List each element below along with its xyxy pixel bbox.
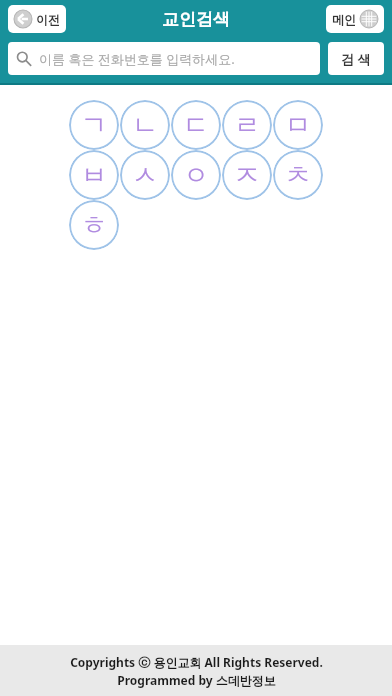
button[interactable]: 이전 bbox=[8, 5, 66, 33]
staticText: ㅁ bbox=[285, 109, 311, 142]
staticText: 메인 bbox=[332, 12, 356, 27]
button[interactable]: ㅂ bbox=[69, 150, 119, 200]
button[interactable]: ㅅ bbox=[120, 150, 170, 200]
staticText: Programmed by 스데반정보 bbox=[117, 672, 276, 688]
staticText: ㅊ bbox=[285, 159, 311, 192]
button[interactable]: 검 색 bbox=[328, 42, 384, 75]
button[interactable]: 메인 bbox=[326, 5, 384, 33]
staticText: ㄴ bbox=[132, 109, 158, 142]
button[interactable]: ㅎ bbox=[69, 200, 119, 250]
staticText: ㄷ bbox=[183, 109, 209, 142]
staticText: ㄱ bbox=[81, 109, 107, 142]
staticText: ㄹ bbox=[234, 109, 260, 142]
staticText: ㅇ bbox=[183, 159, 209, 192]
staticText: ㅈ bbox=[234, 159, 260, 192]
button[interactable]: ㅇ bbox=[171, 150, 221, 200]
staticText: 교인검색 bbox=[162, 9, 230, 30]
staticText: ㅅ bbox=[132, 159, 158, 192]
other: Main menu bbox=[360, 10, 378, 28]
button[interactable]: Search bbox=[8, 42, 320, 75]
staticText: 검 색 bbox=[341, 50, 371, 68]
button[interactable]: ㄱ bbox=[69, 100, 119, 150]
button[interactable]: ㄹ bbox=[222, 100, 272, 150]
button[interactable]: ㄴ bbox=[120, 100, 170, 150]
other: Search bbox=[16, 51, 31, 66]
button[interactable]: ㅊ bbox=[273, 150, 323, 200]
staticText: Copyrights ⓒ 용인교회 All Rights Reserved. bbox=[70, 654, 323, 670]
button[interactable]: ㅈ bbox=[222, 150, 272, 200]
staticText: 이름 혹은 전화번호를 입력하세요. bbox=[39, 50, 235, 68]
staticText: ㅎ bbox=[81, 209, 107, 242]
staticText: 이전 bbox=[36, 12, 60, 27]
button[interactable]: ㅁ bbox=[273, 100, 323, 150]
button[interactable]: ㄷ bbox=[171, 100, 221, 150]
staticText: ㅂ bbox=[81, 159, 107, 192]
